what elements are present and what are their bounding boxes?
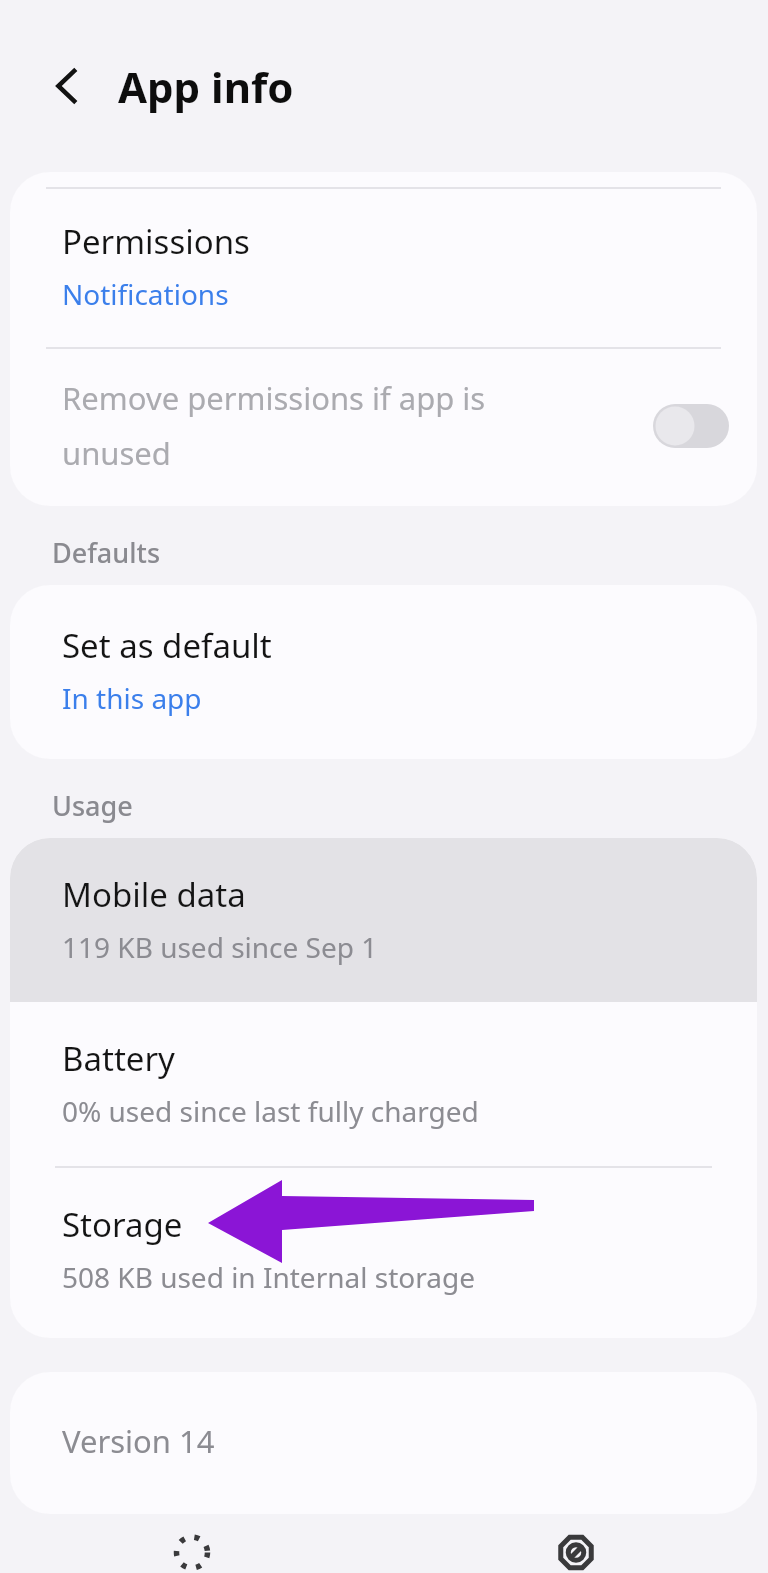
button[interactable]: Storage: [10, 1168, 757, 1338]
staticText: Defaults: [52, 534, 160, 571]
button[interactable]: Back: [32, 51, 102, 121]
staticText: In this app: [62, 679, 202, 717]
staticText: Permissions: [62, 219, 250, 264]
staticText: 0% used since last fully charged: [62, 1092, 479, 1130]
staticText: Battery: [62, 1036, 175, 1081]
staticText: Remove permissions if app is: [62, 377, 486, 419]
staticText: unused: [62, 432, 171, 474]
staticText: Notifications: [62, 275, 229, 313]
staticText: Storage: [62, 1202, 183, 1247]
staticText: Version 14: [62, 1420, 215, 1462]
button[interactable]: Set as default: [10, 585, 757, 759]
staticText: Mobile data: [62, 872, 246, 917]
staticText: App info: [118, 58, 294, 115]
button[interactable]: Force stop: [384, 1514, 768, 1573]
staticText: Usage: [52, 787, 133, 824]
button[interactable]: Version 14: [10, 1372, 757, 1514]
button[interactable]: Battery: [10, 1002, 757, 1166]
button[interactable]: Disable: [0, 1514, 384, 1573]
staticText: Set as default: [62, 623, 272, 668]
staticText: 508 KB used in Internal storage: [62, 1258, 475, 1296]
button[interactable]: Remove permissions if app is: [10, 349, 757, 506]
staticText: 119 KB used since Sep 1: [62, 928, 378, 966]
button[interactable]: Mobile data: [10, 838, 757, 1002]
button[interactable]: Permissions: [10, 189, 757, 347]
